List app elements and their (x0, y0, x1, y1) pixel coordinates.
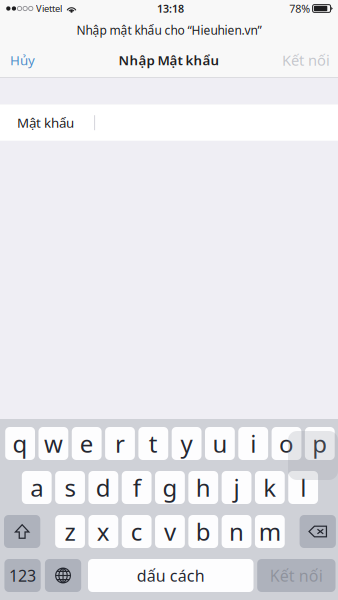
staticText: h (196, 472, 211, 503)
button[interactable]: p (305, 427, 335, 460)
button[interactable]: a (22, 471, 52, 504)
button[interactable]: Next keyboard (45, 559, 81, 592)
button[interactable]: 123 (4, 559, 41, 592)
staticText: q (13, 428, 28, 459)
staticText: t (149, 428, 158, 459)
button[interactable]: q (5, 427, 35, 460)
button[interactable]: x (88, 515, 118, 548)
button[interactable]: h (188, 471, 218, 504)
staticText: m (259, 516, 281, 547)
staticText: Viettel (36, 2, 62, 15)
button[interactable]: Hủy (0, 43, 45, 77)
staticText: Kết nối (282, 50, 330, 70)
button[interactable]: u (205, 427, 235, 460)
staticText: a (30, 472, 43, 503)
staticText: e (80, 428, 94, 459)
button[interactable]: z (55, 515, 85, 548)
button[interactable]: l (288, 471, 318, 504)
staticText: z (64, 516, 75, 547)
staticText: Nhập mật khẩu cho “Hieuhien.vn” (76, 22, 261, 38)
button[interactable]: y (172, 427, 201, 460)
button[interactable]: r (105, 427, 135, 460)
staticText: Nhập Mật khẩu (118, 51, 219, 69)
staticText: Hủy (10, 51, 35, 69)
button[interactable]: b (188, 515, 218, 548)
button[interactable]: dấu cách (88, 559, 253, 592)
staticText: o (279, 428, 294, 459)
staticText: j (233, 472, 239, 503)
staticText: d (96, 472, 111, 503)
button[interactable]: t (138, 427, 168, 460)
button[interactable]: f (122, 471, 151, 504)
staticText: r (115, 428, 125, 459)
button[interactable]: w (38, 427, 68, 460)
staticText: i (250, 428, 256, 459)
staticText: x (97, 516, 110, 547)
staticText: c (131, 516, 143, 547)
button[interactable]: Kết nối (274, 42, 338, 78)
button[interactable]: k (255, 471, 285, 504)
button[interactable]: n (222, 515, 251, 548)
button[interactable]: e (72, 427, 102, 460)
staticText: s (64, 472, 75, 503)
staticText: u (212, 428, 227, 459)
staticText: l (300, 472, 306, 503)
staticText: f (133, 472, 141, 503)
button[interactable]: o (272, 427, 301, 460)
button[interactable]: Delete (300, 515, 336, 548)
staticText: 123 (9, 565, 36, 586)
staticText: k (263, 472, 276, 503)
button[interactable]: m (255, 515, 285, 548)
staticText: 78% (289, 1, 310, 16)
button[interactable]: v (155, 515, 185, 548)
button[interactable]: s (55, 471, 85, 504)
staticText: n (229, 516, 244, 547)
staticText: dấu cách (137, 565, 205, 586)
button[interactable]: g (155, 471, 185, 504)
staticText: 13:18 (157, 1, 184, 16)
staticText: y (181, 428, 193, 459)
staticText: w (44, 428, 63, 459)
button[interactable]: c (122, 515, 151, 548)
button[interactable]: i (238, 427, 268, 460)
staticText: v (164, 516, 176, 547)
staticText: Mật khẩu (17, 114, 74, 131)
staticText: p (312, 428, 327, 459)
button[interactable]: d (88, 471, 118, 504)
staticText: Kết nối (270, 565, 323, 586)
staticText: g (162, 472, 177, 503)
button[interactable]: Kết nối (257, 559, 335, 592)
button[interactable]: Shift (4, 515, 40, 548)
button[interactable]: j (222, 471, 251, 504)
staticText: b (196, 516, 211, 547)
